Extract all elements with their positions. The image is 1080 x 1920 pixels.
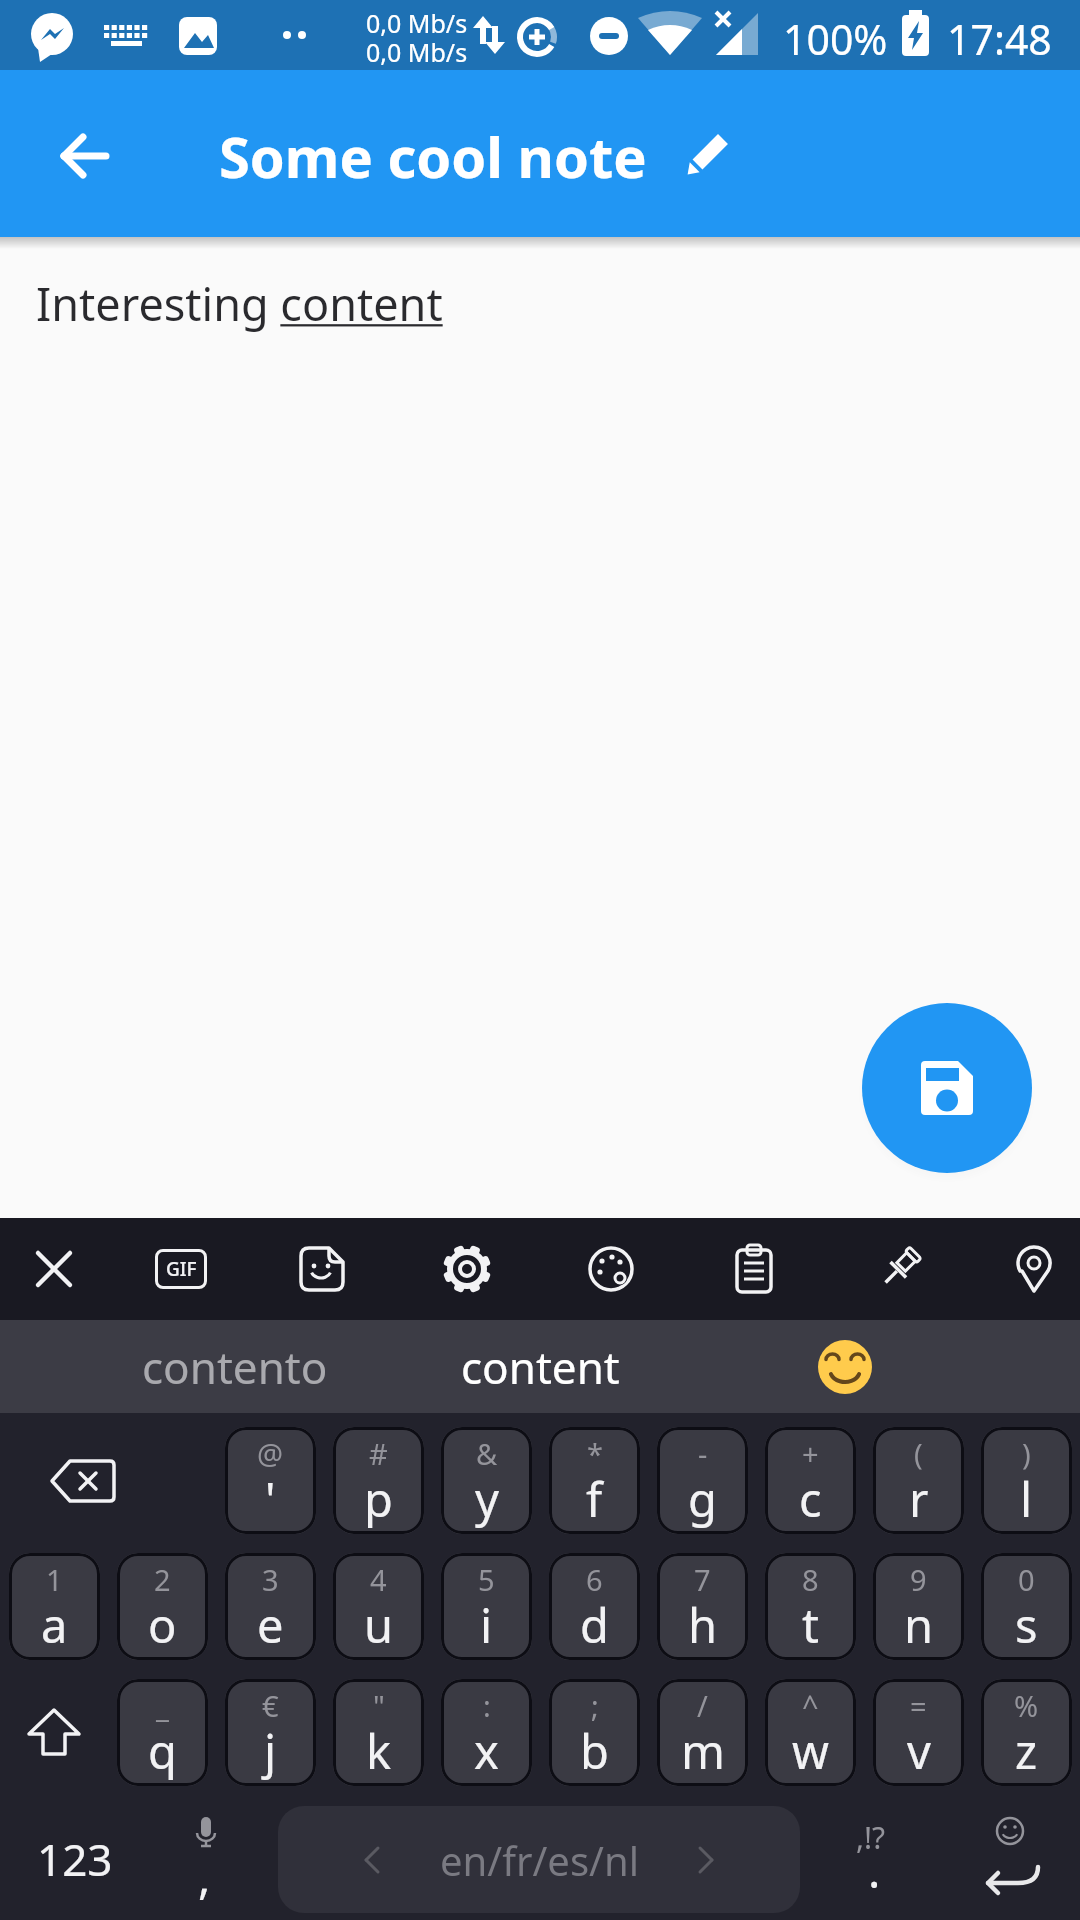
staticText: + bbox=[802, 1434, 819, 1473]
staticText: 7 bbox=[694, 1560, 711, 1599]
staticText: 100% bbox=[783, 11, 888, 67]
staticText: u bbox=[364, 1593, 394, 1657]
button[interactable]: content bbox=[415, 1320, 665, 1413]
button[interactable]: 123 bbox=[10, 1805, 140, 1912]
button[interactable]: = bbox=[873, 1679, 964, 1786]
staticText: = bbox=[910, 1686, 927, 1725]
button[interactable]: # bbox=[333, 1427, 424, 1534]
button[interactable] bbox=[427, 1229, 507, 1309]
staticText: n bbox=[904, 1593, 934, 1657]
button[interactable]: - bbox=[657, 1427, 748, 1534]
staticText: . bbox=[868, 1839, 881, 1902]
button[interactable]: 2 bbox=[117, 1553, 208, 1660]
button[interactable]: " bbox=[333, 1679, 424, 1786]
staticText: 123 bbox=[37, 1829, 113, 1889]
staticText: s bbox=[1015, 1593, 1038, 1657]
staticText: , bbox=[198, 1845, 211, 1908]
button[interactable]: @ bbox=[225, 1427, 316, 1534]
button[interactable]: 9 bbox=[873, 1553, 964, 1660]
staticText: h bbox=[688, 1593, 718, 1657]
staticText: 0 bbox=[1018, 1560, 1035, 1599]
button[interactable]: , bbox=[150, 1805, 260, 1912]
button[interactable]: ) bbox=[981, 1427, 1072, 1534]
staticText: Some cool note bbox=[219, 118, 647, 194]
staticText: GIF bbox=[166, 1256, 197, 1282]
staticText: 6 bbox=[586, 1560, 603, 1599]
staticText: o bbox=[148, 1593, 177, 1657]
staticText: f bbox=[586, 1467, 603, 1531]
button[interactable]: € bbox=[225, 1679, 316, 1786]
button[interactable] bbox=[0, 1679, 108, 1786]
staticText: g bbox=[688, 1467, 717, 1531]
staticText: € bbox=[262, 1686, 279, 1725]
staticText: w bbox=[792, 1719, 829, 1783]
button[interactable]: : bbox=[441, 1679, 532, 1786]
button[interactable]: & bbox=[441, 1427, 532, 1534]
staticText: l bbox=[1020, 1467, 1033, 1531]
staticText: t bbox=[802, 1593, 819, 1657]
button[interactable]: / bbox=[657, 1679, 748, 1786]
staticText: 0,0 Mb/s 0,0 Mb/s bbox=[366, 6, 468, 69]
button[interactable]: 6 bbox=[549, 1553, 640, 1660]
button[interactable]: 4 bbox=[333, 1553, 424, 1660]
button[interactable] bbox=[571, 1229, 651, 1309]
staticText: ^ bbox=[802, 1686, 819, 1725]
staticText: 9 bbox=[910, 1560, 927, 1599]
button[interactable] bbox=[994, 1229, 1074, 1309]
button[interactable] bbox=[785, 1320, 905, 1413]
button[interactable] bbox=[715, 1229, 795, 1309]
button[interactable]: ^ bbox=[765, 1679, 856, 1786]
staticText: _ bbox=[156, 1686, 169, 1725]
button[interactable]: GIF bbox=[141, 1229, 221, 1309]
staticText: 17:48 bbox=[947, 11, 1052, 67]
button[interactable]: + bbox=[765, 1427, 856, 1534]
staticText: 5 bbox=[478, 1560, 495, 1599]
staticText: - bbox=[698, 1434, 708, 1473]
button[interactable] bbox=[40, 111, 130, 201]
staticText: % bbox=[1014, 1686, 1039, 1725]
staticText: * bbox=[587, 1434, 603, 1473]
staticText: c bbox=[799, 1467, 822, 1531]
staticText: 4 bbox=[370, 1560, 387, 1599]
button[interactable]: en/fr/es/nl bbox=[278, 1806, 800, 1913]
staticText: x bbox=[474, 1719, 499, 1783]
staticText: 2 bbox=[154, 1560, 171, 1599]
button[interactable]: contento bbox=[110, 1320, 360, 1413]
button[interactable]: 0 bbox=[981, 1553, 1072, 1660]
button[interactable]: * bbox=[549, 1427, 640, 1534]
staticText: v bbox=[907, 1719, 931, 1783]
staticText: ; bbox=[591, 1686, 599, 1725]
staticText: # bbox=[369, 1434, 388, 1473]
staticText: " bbox=[373, 1686, 385, 1725]
button[interactable] bbox=[0, 1427, 165, 1534]
button[interactable]: 3 bbox=[225, 1553, 316, 1660]
button[interactable]: ; bbox=[549, 1679, 640, 1786]
staticText: 3 bbox=[262, 1560, 279, 1599]
staticText: q bbox=[148, 1719, 177, 1783]
staticText: & bbox=[476, 1434, 498, 1473]
staticText: contento bbox=[142, 1337, 328, 1397]
button[interactable] bbox=[14, 1229, 94, 1309]
staticText: r bbox=[909, 1467, 929, 1531]
button[interactable] bbox=[661, 111, 751, 201]
staticText: Interesting content bbox=[36, 273, 443, 334]
staticText: d bbox=[580, 1593, 609, 1657]
staticText: ( bbox=[914, 1434, 923, 1473]
button[interactable]: 8 bbox=[765, 1553, 856, 1660]
staticText: m bbox=[681, 1719, 725, 1783]
button[interactable]: % bbox=[981, 1679, 1072, 1786]
button[interactable]: 5 bbox=[441, 1553, 532, 1660]
button[interactable]: 1 bbox=[9, 1553, 100, 1660]
button[interactable] bbox=[282, 1229, 362, 1309]
staticText: e bbox=[257, 1593, 284, 1657]
staticText: j bbox=[264, 1719, 277, 1783]
button[interactable]: 7 bbox=[657, 1553, 748, 1660]
button[interactable] bbox=[859, 1229, 939, 1309]
button[interactable]: ( bbox=[873, 1427, 964, 1534]
staticText: / bbox=[697, 1686, 708, 1725]
staticText: en/fr/es/nl bbox=[440, 1833, 639, 1887]
button[interactable] bbox=[862, 1003, 1032, 1173]
button[interactable] bbox=[940, 1805, 1075, 1912]
button[interactable]: ,!? bbox=[820, 1805, 932, 1912]
button[interactable]: _ bbox=[117, 1679, 208, 1786]
